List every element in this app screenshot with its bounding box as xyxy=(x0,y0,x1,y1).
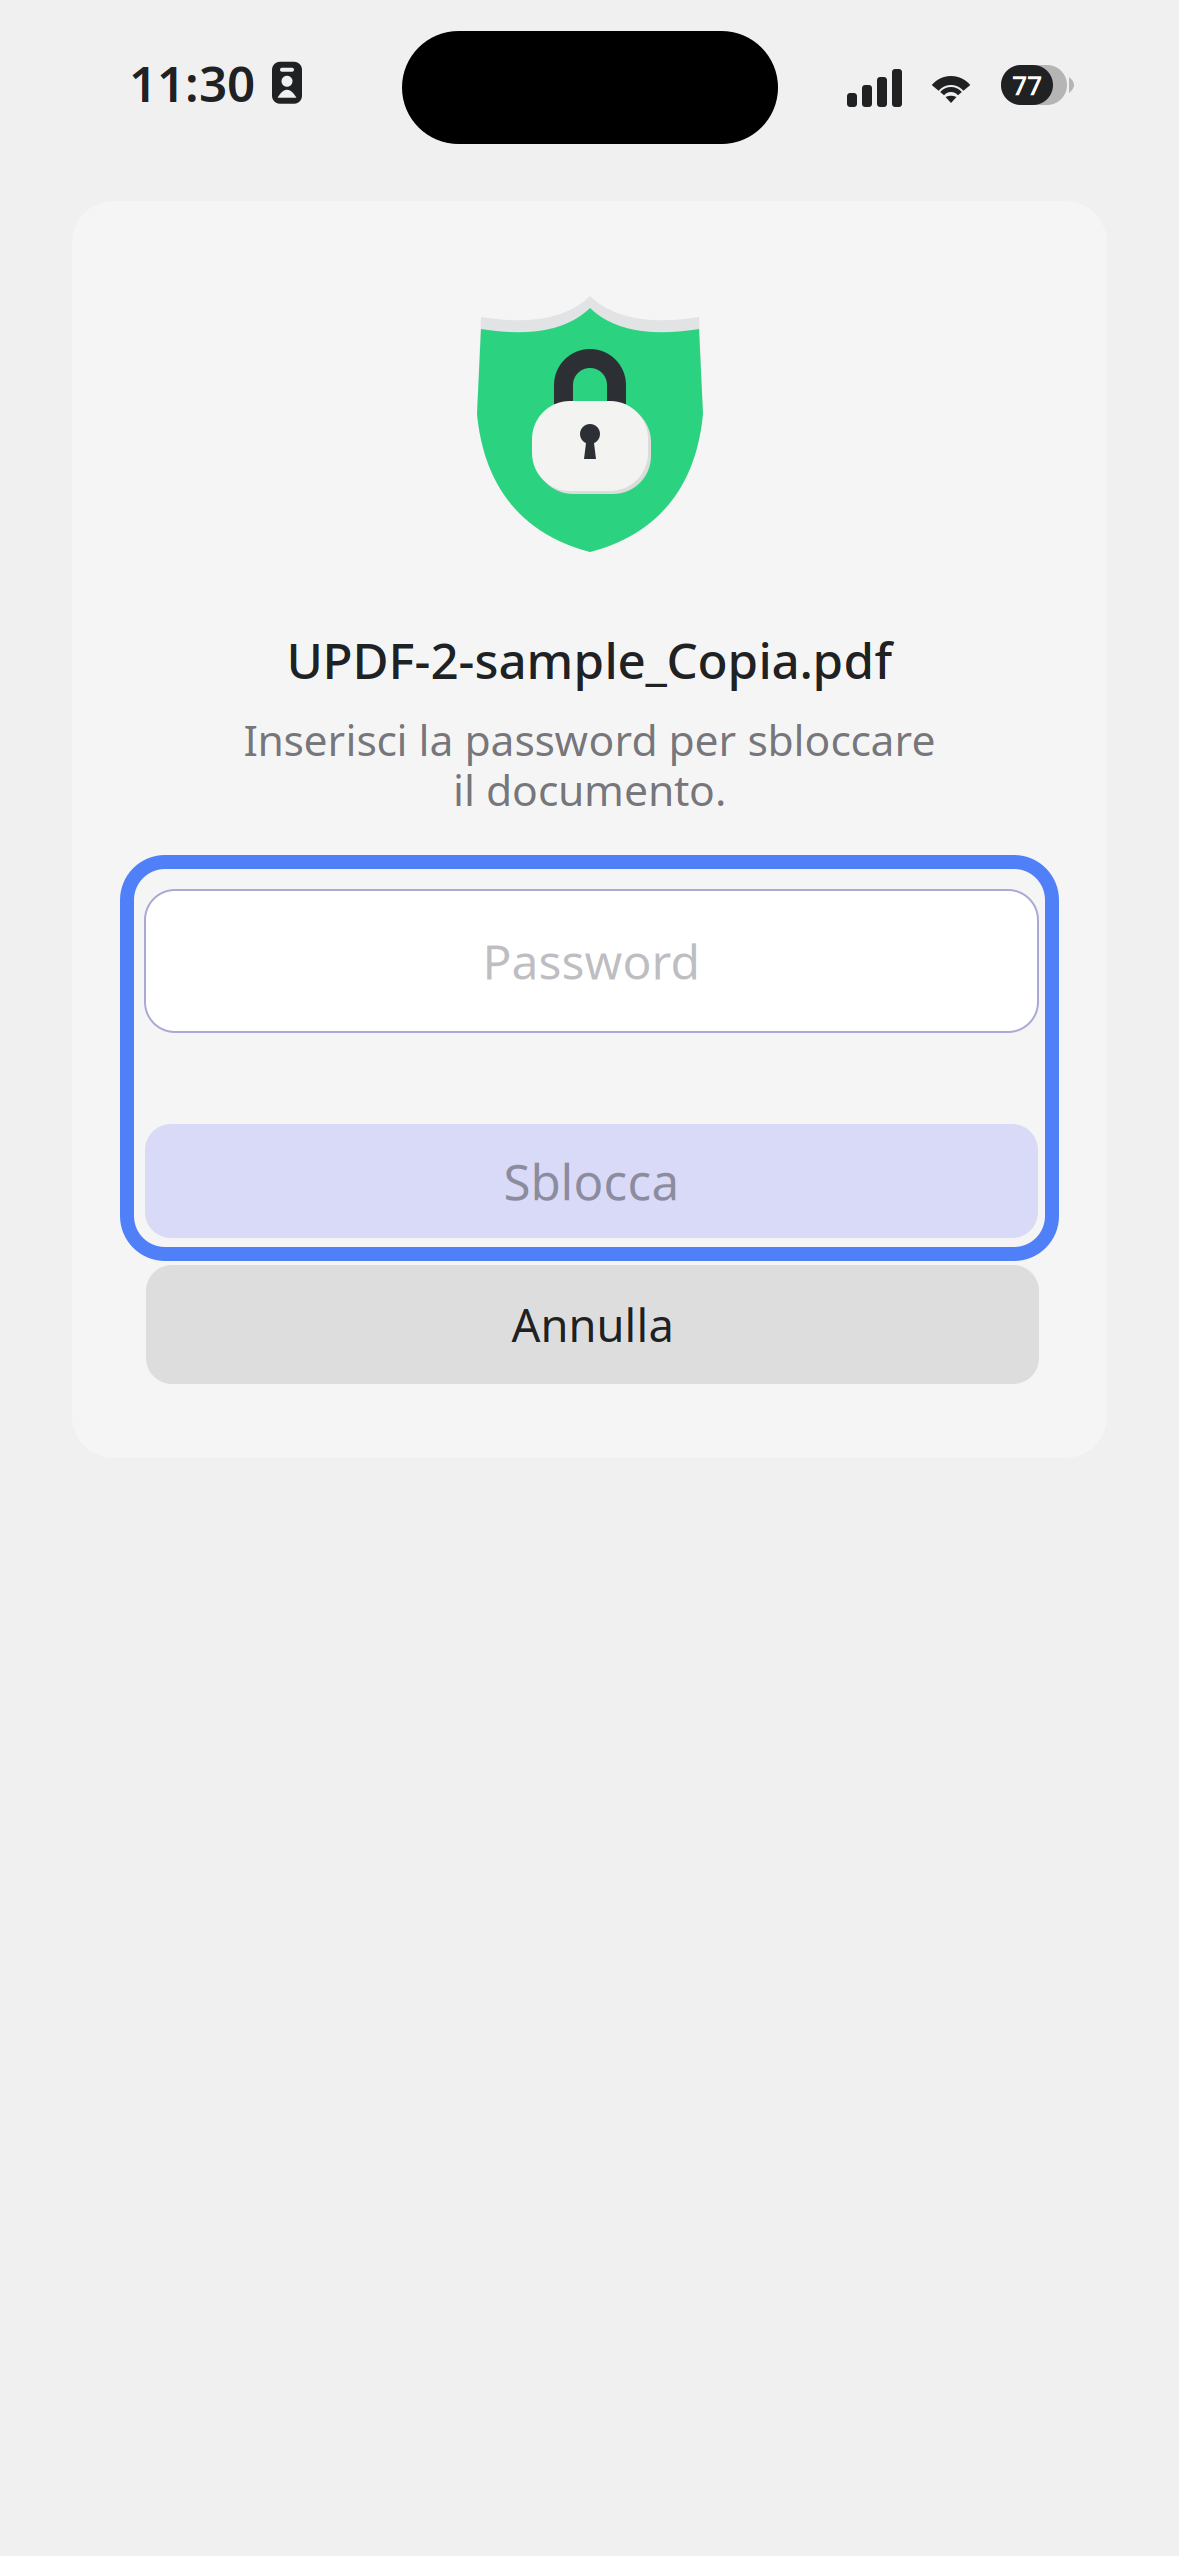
button[interactable]: Annulla xyxy=(146,1265,1039,1384)
staticText: Annulla xyxy=(511,1294,673,1355)
staticText: il documento. xyxy=(453,761,726,818)
button[interactable]: Sblocca xyxy=(145,1124,1038,1238)
staticText: 11:30 xyxy=(129,50,255,115)
staticText: UPDF-2-sample_Copia.pdf xyxy=(286,627,892,692)
staticText: Inserisci la password per sbloccare xyxy=(243,711,935,768)
staticText: Sblocca xyxy=(503,1148,679,1214)
staticText: 77 xyxy=(1012,67,1042,103)
staticText: Password xyxy=(482,929,700,993)
